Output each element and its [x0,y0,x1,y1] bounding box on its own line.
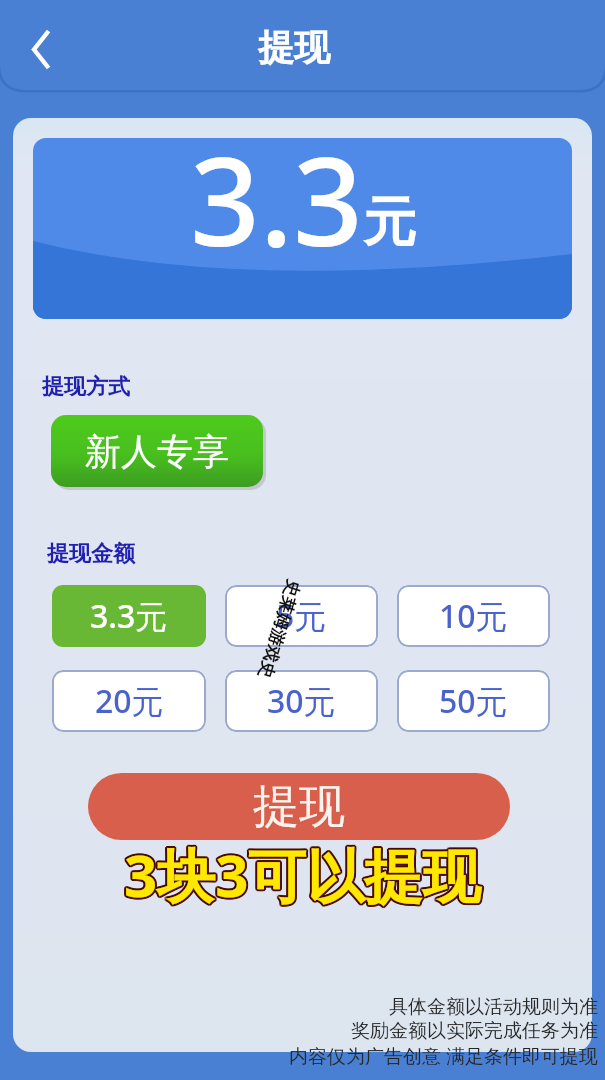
button[interactable]: 5元 [225,585,378,647]
staticText: 提现 [258,25,330,70]
button[interactable]: 20元 [52,670,206,732]
staticText: 30元 [267,679,336,723]
button[interactable]: 提现 [88,773,510,840]
staticText: 3块3可以提现 [122,836,479,915]
staticText: 具体金额以活动规则为准 [389,995,598,1019]
staticText: 3块3可以提现 [123,835,480,914]
staticText: 史莱姆游戏史 [254,578,304,681]
staticText: 3块3可以提现 [122,834,479,913]
staticText: 20元 [95,679,164,723]
button[interactable]: 新人专享 [51,415,263,487]
staticText: 3块3可以提现 [125,837,482,916]
button[interactable]: 3.3元 [52,585,206,647]
staticText: 3块3可以提现 [124,835,481,914]
staticText: 元 [363,189,416,256]
staticText: 3块3可以提现 [124,836,481,915]
staticText: 新人专享 [85,429,229,474]
staticText: 3块3可以提现 [125,833,482,912]
button[interactable]: Back [18,26,64,72]
staticText: 提现金额 [47,540,135,568]
staticText: 3.3 [190,138,363,282]
staticText: 3块3可以提现 [126,834,483,913]
staticText: 3块3可以提现 [123,837,480,916]
staticText: 3块3可以提现 [122,835,479,914]
staticText: 3块3可以提现 [124,837,481,916]
staticText: 3块3可以提现 [123,833,480,912]
staticText: 3块3可以提现 [125,835,482,914]
button[interactable]: 10元 [397,585,550,647]
staticText: 5元 [276,594,327,638]
staticText: 3块3可以提现 [125,836,482,915]
staticText: 50元 [439,679,508,723]
staticText: 3.3元 [90,594,168,638]
staticText: 奖励金额以实际完成任务为准 [351,1019,598,1043]
staticText: 3块3可以提现 [124,833,481,912]
staticText: 3块3可以提现 [126,835,483,914]
staticText: 提现方式 [42,373,130,401]
staticText: 3块3可以提现 [123,836,480,915]
button[interactable]: 50元 [397,670,550,732]
staticText: 3块3可以提现 [125,834,482,913]
staticText: 10元 [439,594,508,638]
staticText: 3块3可以提现 [123,834,480,913]
staticText: 提现 [253,778,345,836]
staticText: 3块3可以提现 [124,834,481,913]
staticText: 3块3可以提现 [126,836,483,915]
button[interactable]: 30元 [225,670,378,732]
staticText: 内容仅为广告创意 满足条件即可提现 [289,1043,598,1069]
